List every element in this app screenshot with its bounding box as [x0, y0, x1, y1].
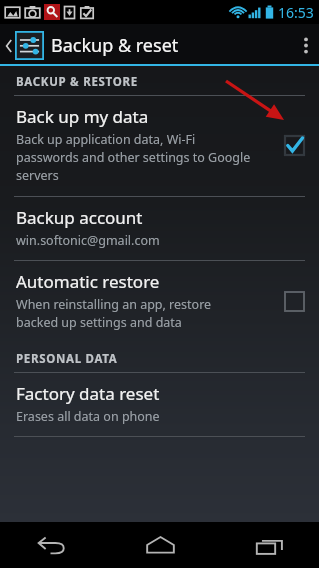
- staticText: Backup account: [16, 206, 143, 229]
- staticText: 16:53: [278, 3, 314, 22]
- staticText: PERSONAL DATA: [16, 351, 118, 367]
- staticText: Factory data reset: [16, 382, 160, 405]
- staticText: Erases all data on phone: [16, 408, 160, 425]
- staticText: passwords and other settings to Google: [16, 149, 251, 166]
- button[interactable]: Back: [26, 522, 74, 568]
- button[interactable]: Home: [136, 522, 184, 568]
- staticText: When reinstalling an app, restore: [16, 296, 212, 313]
- staticText: Back up my data: [16, 105, 149, 128]
- button[interactable]: Automatic restore, off: [279, 286, 309, 316]
- staticText: BACKUP & RESTORE: [16, 74, 138, 90]
- button[interactable]: Factory data reset: [0, 373, 319, 436]
- button[interactable]: Back up my data, on: [279, 130, 309, 160]
- staticText: Backup & reset: [51, 33, 179, 58]
- button[interactable]: Backup account: [0, 197, 319, 260]
- staticText: Back up application data, Wi-Fi: [16, 131, 196, 148]
- button[interactable]: Recent apps: [245, 522, 293, 568]
- staticText: backed up settings and data: [16, 314, 182, 331]
- button[interactable]: Automatic restore: [0, 261, 319, 343]
- button[interactable]: More options: [293, 30, 319, 61]
- staticText: Automatic restore: [16, 270, 160, 293]
- staticText: win.softonic@gmail.com: [16, 232, 160, 249]
- button[interactable]: Back up my data: [0, 96, 319, 196]
- button[interactable]: Navigate up: [0, 27, 187, 64]
- staticText: servers: [16, 167, 59, 184]
